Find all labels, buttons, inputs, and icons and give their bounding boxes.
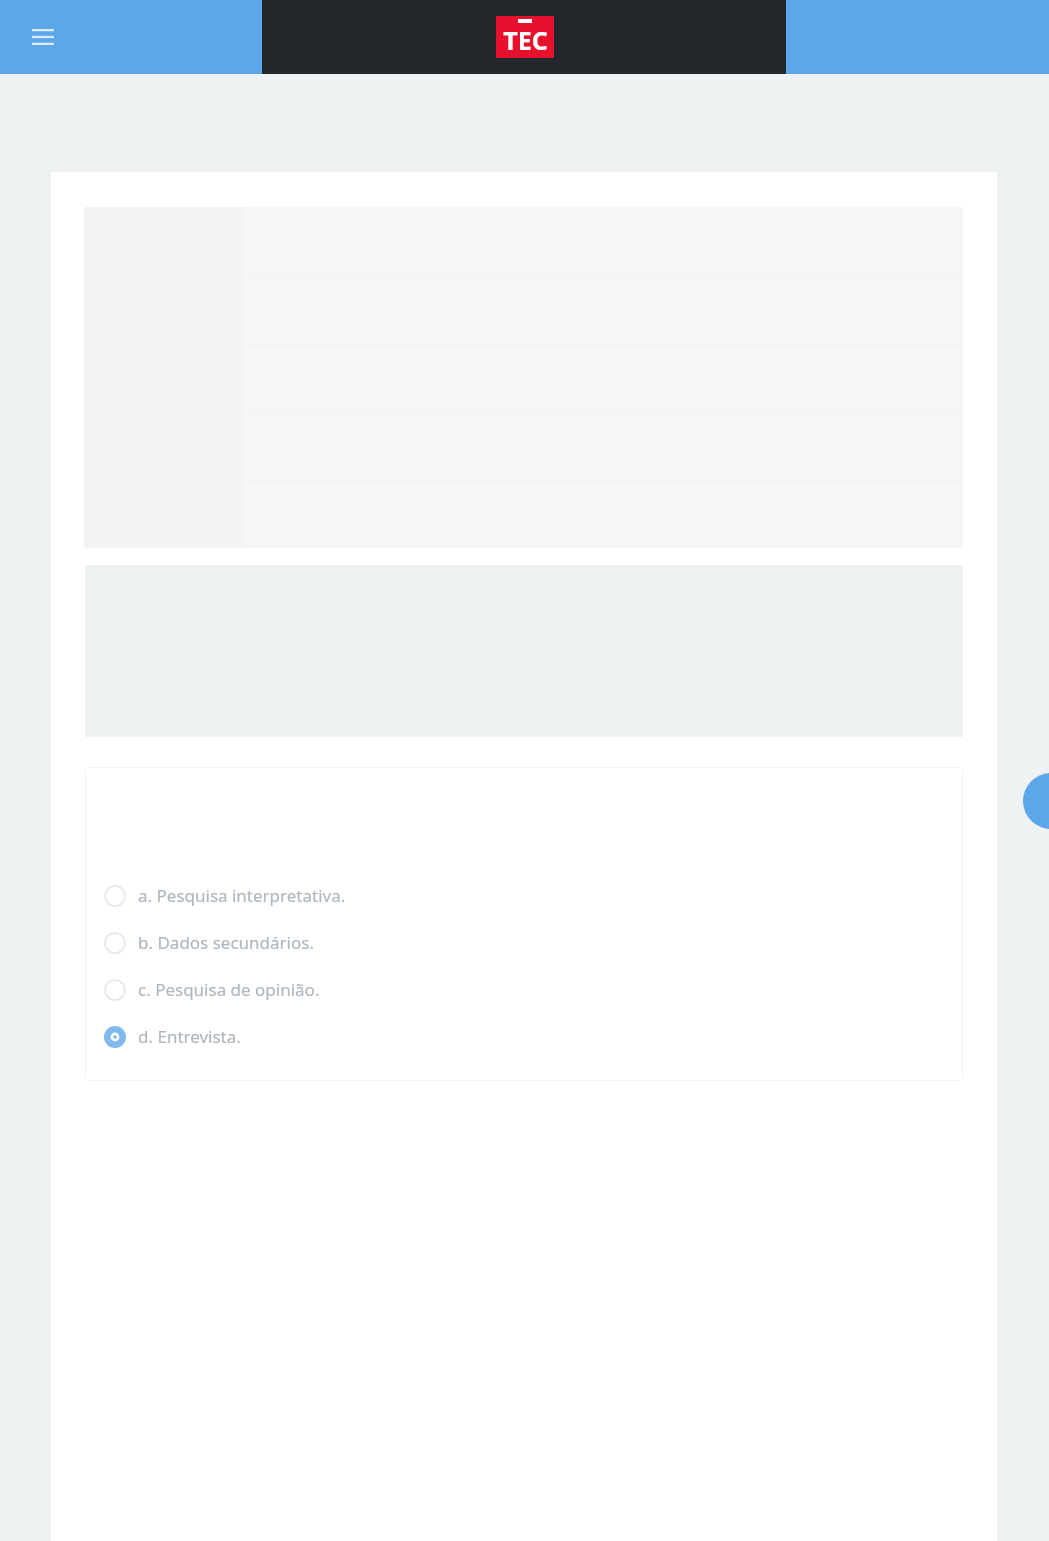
staticText: a. Pesquisa interpretativa. [138, 884, 346, 907]
staticText: c. Pesquisa de opinião. [138, 978, 320, 1001]
button[interactable]: Menu [24, 18, 62, 56]
staticText: d. Entrevista. [138, 1025, 241, 1048]
staticText: TEC [503, 23, 548, 57]
button[interactable]: a. Pesquisa interpretativa. [85, 872, 963, 919]
button[interactable]: d. Entrevista. [85, 1013, 963, 1060]
staticText: b. Dados secundários. [138, 931, 314, 954]
button[interactable]: Next [1023, 773, 1049, 829]
button[interactable]: c. Pesquisa de opinião. [85, 966, 963, 1013]
button[interactable]: b. Dados secundários. [85, 919, 963, 966]
button[interactable]: TEC logo [496, 16, 554, 58]
